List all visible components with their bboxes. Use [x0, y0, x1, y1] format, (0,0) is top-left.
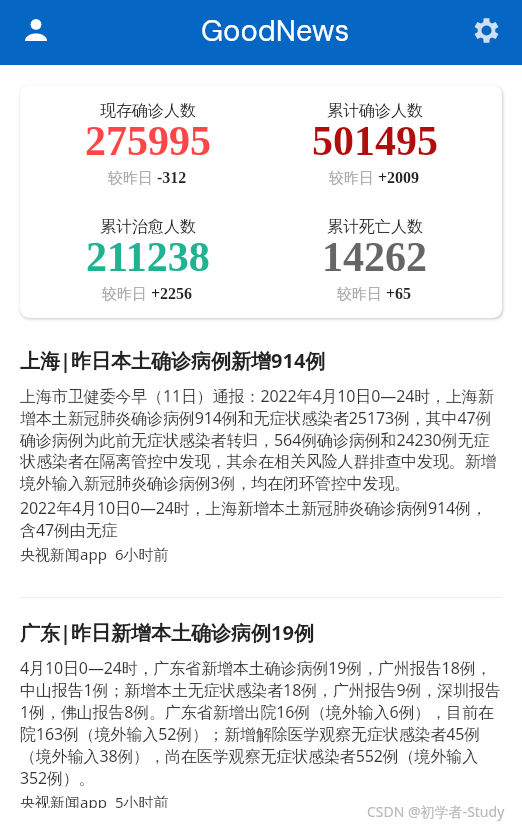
staticText: 累计治愈人数: [100, 217, 196, 237]
staticText: 累计死亡人数: [327, 217, 423, 237]
button[interactable]: Account: [13, 7, 58, 52]
staticText: 275995: [85, 118, 211, 165]
button[interactable]: Settings: [464, 8, 509, 53]
staticText: CSDN @初学者-Study: [367, 802, 505, 821]
staticText: 累计确诊人数: [327, 101, 423, 121]
staticText: 央视新闻app: [20, 792, 107, 808]
staticText: 上海|昨日本土确诊病例新增914例: [20, 347, 326, 374]
staticText: 上海市卫健委今早（11日）通报：2022年4月10日0—24时，上海新 增本土新…: [20, 385, 497, 494]
staticText: 央视新闻app: [20, 544, 107, 564]
staticText: 广东|昨日新增本土确诊病例19例: [20, 619, 314, 646]
staticText: 4月10日0—24时，广东省新增本土确诊病例19例，广州报告18例， 中山报告1…: [20, 657, 501, 789]
staticText: 较昨日 +65: [337, 283, 412, 303]
staticText: 较昨日 +2009: [329, 167, 420, 187]
staticText: GoodNews: [201, 12, 350, 50]
staticText: 较昨日 -312: [108, 167, 187, 187]
button[interactable]: 广东|昨日新增本土确诊病例19例: [0, 598, 522, 831]
staticText: 较昨日 +2256: [102, 283, 193, 303]
staticText: 现存确诊人数: [100, 101, 196, 121]
staticText: 211238: [86, 234, 210, 281]
staticText: 5小时前: [115, 792, 169, 808]
staticText: 14262: [322, 234, 427, 281]
button[interactable]: 上海|昨日本土确诊病例新增914例: [0, 318, 522, 597]
staticText: 2022年4月10日0—24时，上海新增本土新冠肺炎确诊病例914例， 含47例…: [20, 497, 487, 541]
staticText: 501495: [312, 118, 438, 165]
staticText: 6小时前: [115, 544, 169, 564]
